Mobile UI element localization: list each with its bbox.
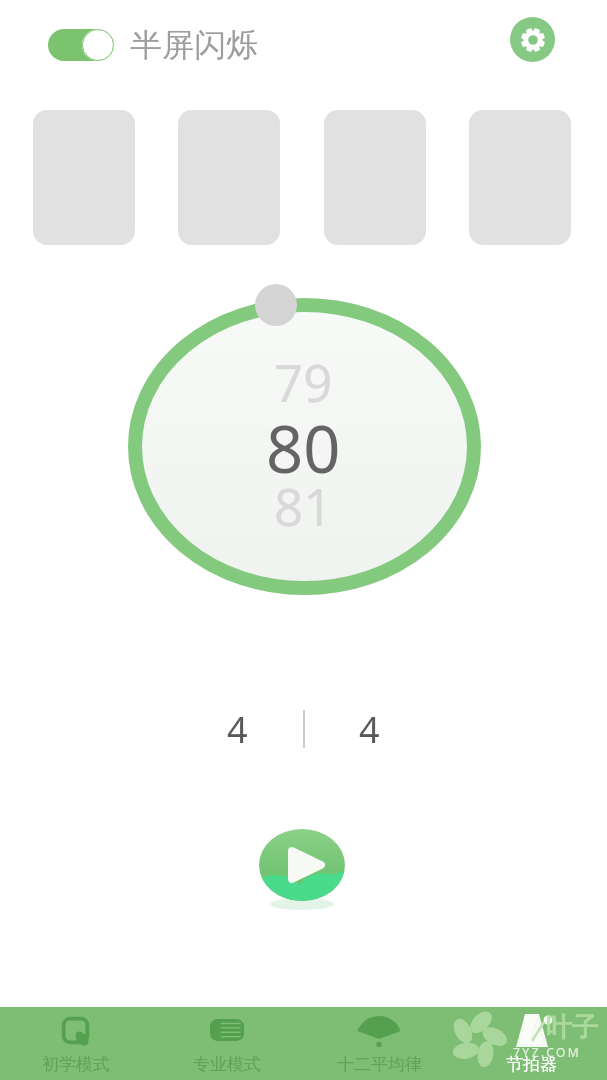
- button[interactable]: 4: [227, 705, 248, 754]
- button[interactable]: [469, 110, 571, 245]
- staticText: 十二平均律: [337, 1054, 422, 1075]
- button[interactable]: [48, 29, 114, 61]
- button[interactable]: 4: [359, 705, 380, 754]
- button[interactable]: 节拍器: [455, 1007, 607, 1080]
- staticText: 专业模式: [193, 1054, 261, 1075]
- button[interactable]: [250, 818, 354, 914]
- button[interactable]: [510, 17, 555, 62]
- button[interactable]: 专业模式: [151, 1007, 303, 1080]
- staticText: 4: [359, 705, 380, 754]
- staticText: 81: [274, 471, 333, 540]
- staticText: 半屏闪烁: [130, 25, 258, 65]
- button[interactable]: [178, 110, 280, 245]
- staticText: 4: [227, 705, 248, 754]
- staticText: 节拍器: [506, 1054, 557, 1075]
- staticText: 叶子: [546, 1011, 598, 1044]
- staticText: 79: [274, 347, 333, 416]
- button[interactable]: 初学模式: [0, 1007, 151, 1080]
- button[interactable]: 十二平均律: [303, 1007, 455, 1080]
- button[interactable]: [33, 110, 135, 245]
- staticText: 初学模式: [42, 1054, 110, 1075]
- button[interactable]: [324, 110, 426, 245]
- staticText: 7YZ.COM: [513, 1044, 582, 1060]
- staticText: 80: [266, 404, 341, 493]
